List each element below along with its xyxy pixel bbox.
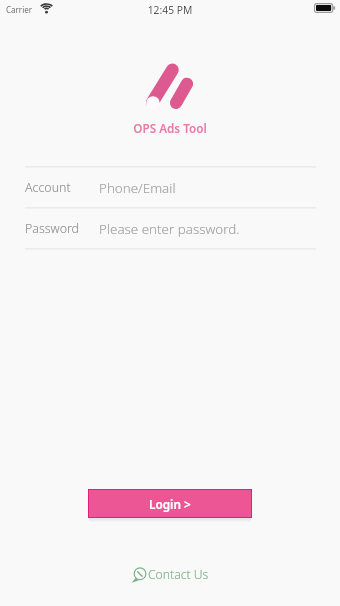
button[interactable]: Login > xyxy=(88,489,252,518)
staticText: Account xyxy=(25,179,71,196)
other: Battery full xyxy=(314,3,336,13)
button[interactable]: Contact us on WhatsApp xyxy=(131,566,209,583)
staticText: Password xyxy=(25,220,80,237)
staticText: 12:45 PM xyxy=(0,3,340,17)
staticText: Login > xyxy=(149,496,191,512)
staticText: Carrier xyxy=(6,4,33,15)
button[interactable]: Account xyxy=(25,168,316,207)
button[interactable]: Password xyxy=(25,209,316,248)
staticText: Contact Us xyxy=(148,566,209,583)
other: Wifi signal xyxy=(40,4,53,14)
staticText: OPS Ads Tool xyxy=(0,120,340,136)
other: Contact us on WhatsApp xyxy=(131,567,148,582)
staticText: Please enter password. xyxy=(99,220,240,238)
staticText: Phone/Email xyxy=(99,179,176,197)
